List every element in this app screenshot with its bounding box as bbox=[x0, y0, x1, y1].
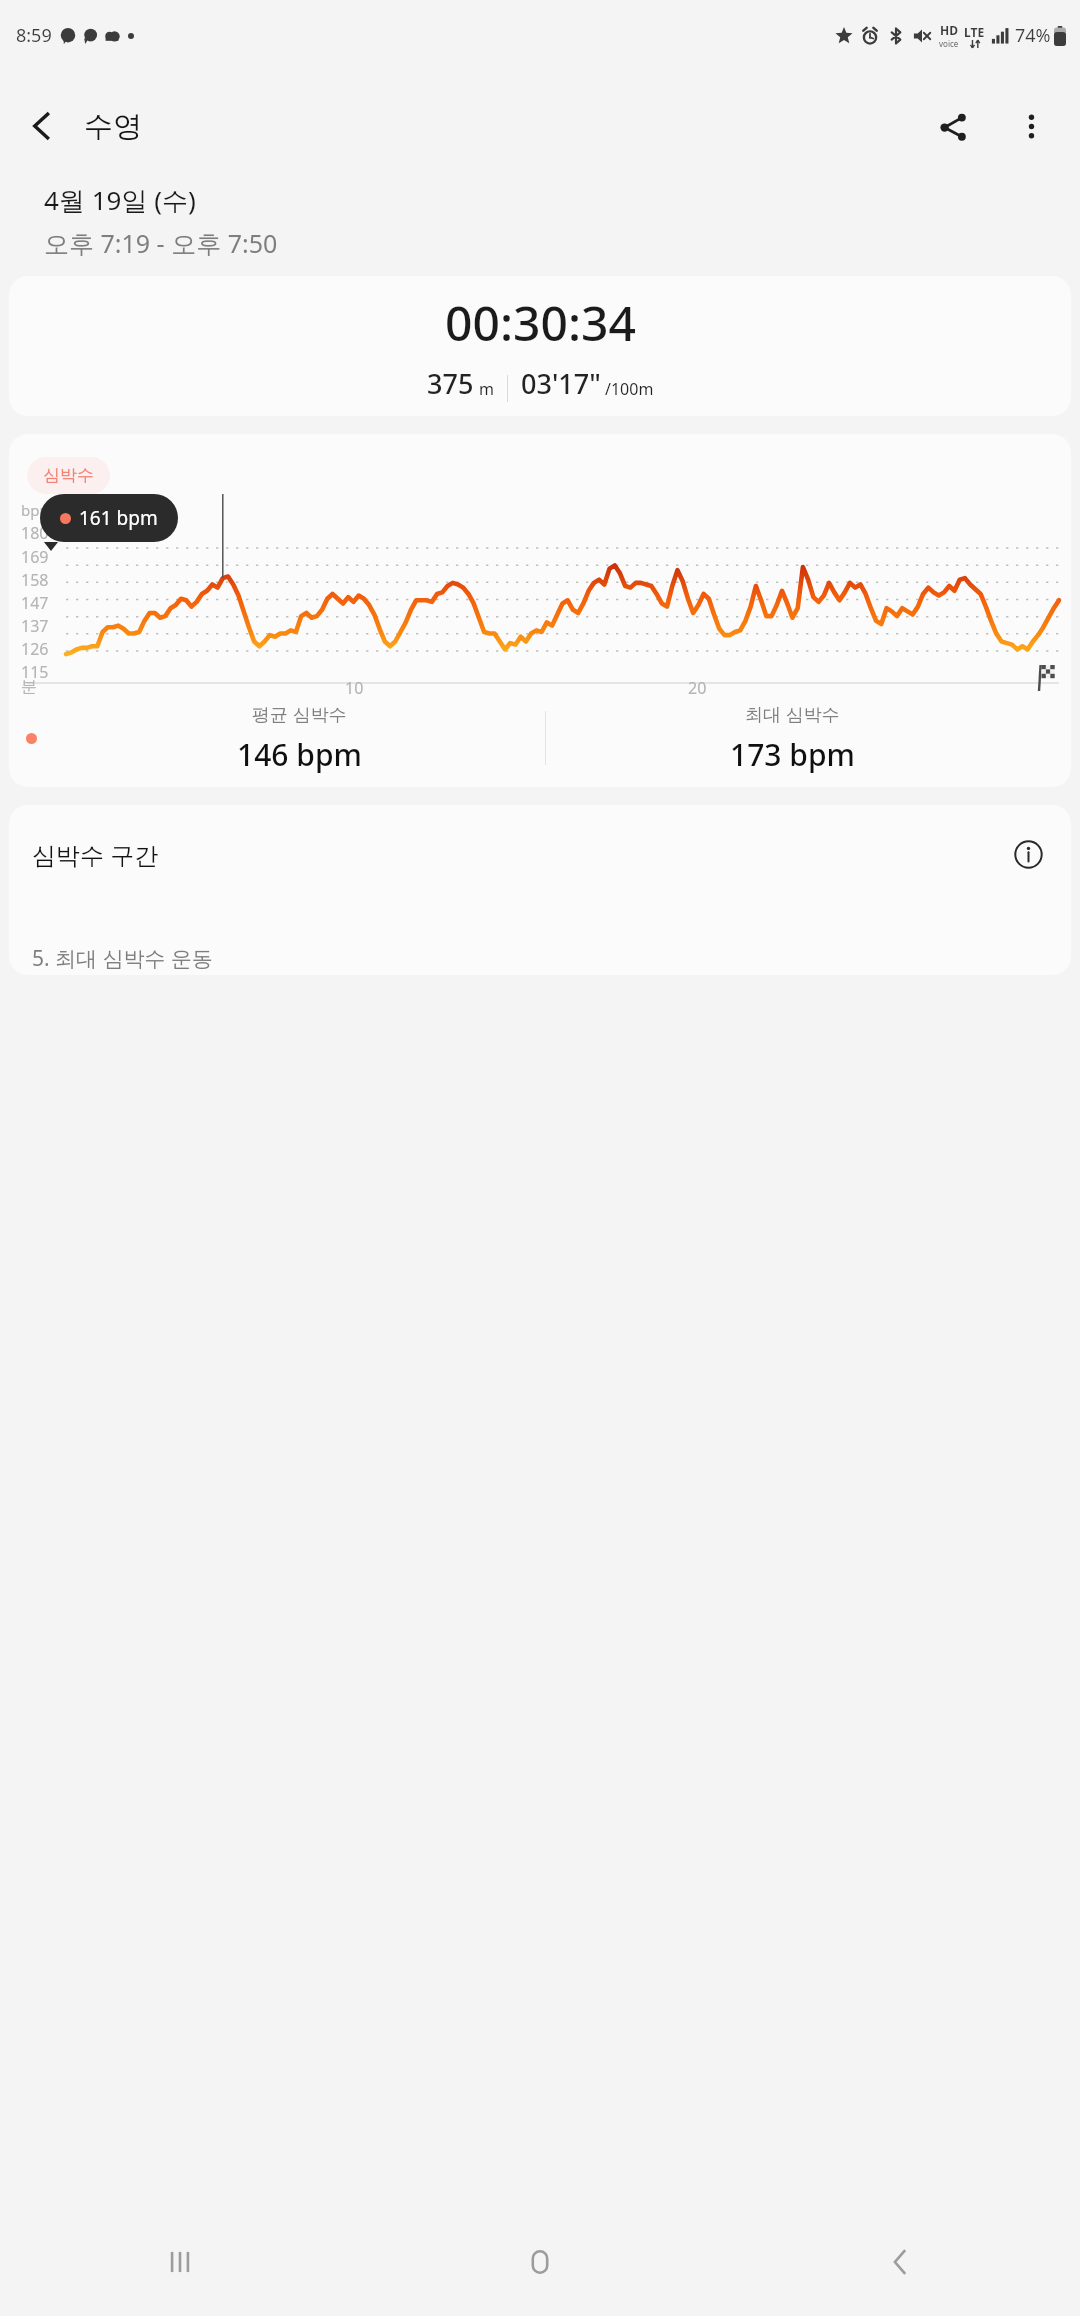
staticText: 수영 bbox=[84, 108, 142, 145]
staticText: 137 bbox=[21, 615, 49, 637]
staticText: 126 bbox=[21, 638, 49, 660]
staticText: 00:30:34 bbox=[445, 290, 636, 355]
staticText: 169 bbox=[21, 546, 49, 568]
staticText: 158 bbox=[21, 569, 49, 591]
staticText: 심박수 구간 bbox=[32, 838, 159, 871]
button[interactable]: More options bbox=[992, 87, 1070, 165]
staticText: LTE bbox=[964, 24, 985, 40]
staticText: 8:59 bbox=[16, 23, 52, 48]
staticText: 분 bbox=[21, 677, 37, 697]
staticText: /100m bbox=[605, 378, 654, 400]
staticText: 오후 7:19 - 오후 7:50 bbox=[44, 226, 278, 260]
button[interactable]: Back bbox=[720, 2208, 1080, 2316]
staticText: 5. 최대 심박수 운동 bbox=[32, 944, 214, 973]
staticText: 375 bbox=[427, 365, 474, 402]
staticText: 10 bbox=[345, 677, 364, 699]
staticText: 4월 19일 (수) bbox=[44, 182, 196, 218]
button[interactable]: 00:30:34 bbox=[9, 276, 1071, 416]
staticText: 심박수 bbox=[43, 465, 94, 486]
staticText: HD bbox=[940, 22, 958, 38]
button[interactable]: Recent apps bbox=[0, 2208, 360, 2316]
staticText: 최대 심박수 bbox=[745, 702, 840, 727]
button[interactable]: Info bbox=[1005, 831, 1051, 877]
staticText: 74% bbox=[1015, 23, 1051, 48]
staticText: m bbox=[479, 378, 494, 400]
staticText: 180 bbox=[21, 522, 49, 544]
button[interactable]: Share bbox=[914, 87, 992, 165]
staticText: 147 bbox=[21, 592, 49, 614]
button[interactable]: 심박수 bbox=[27, 457, 110, 494]
staticText: 173 bpm bbox=[730, 734, 855, 775]
staticText: 146 bpm bbox=[237, 734, 362, 775]
button[interactable]: Home bbox=[360, 2208, 720, 2316]
staticText: 03'17" bbox=[521, 365, 601, 402]
staticText: 평균 심박수 bbox=[252, 702, 347, 727]
staticText: 20 bbox=[688, 677, 707, 699]
staticText: 115 bbox=[21, 661, 49, 683]
staticText: 161 bpm bbox=[79, 505, 158, 531]
button[interactable]: Back bbox=[0, 84, 84, 168]
staticText: voice bbox=[939, 38, 959, 49]
staticText: bpm bbox=[21, 500, 54, 520]
